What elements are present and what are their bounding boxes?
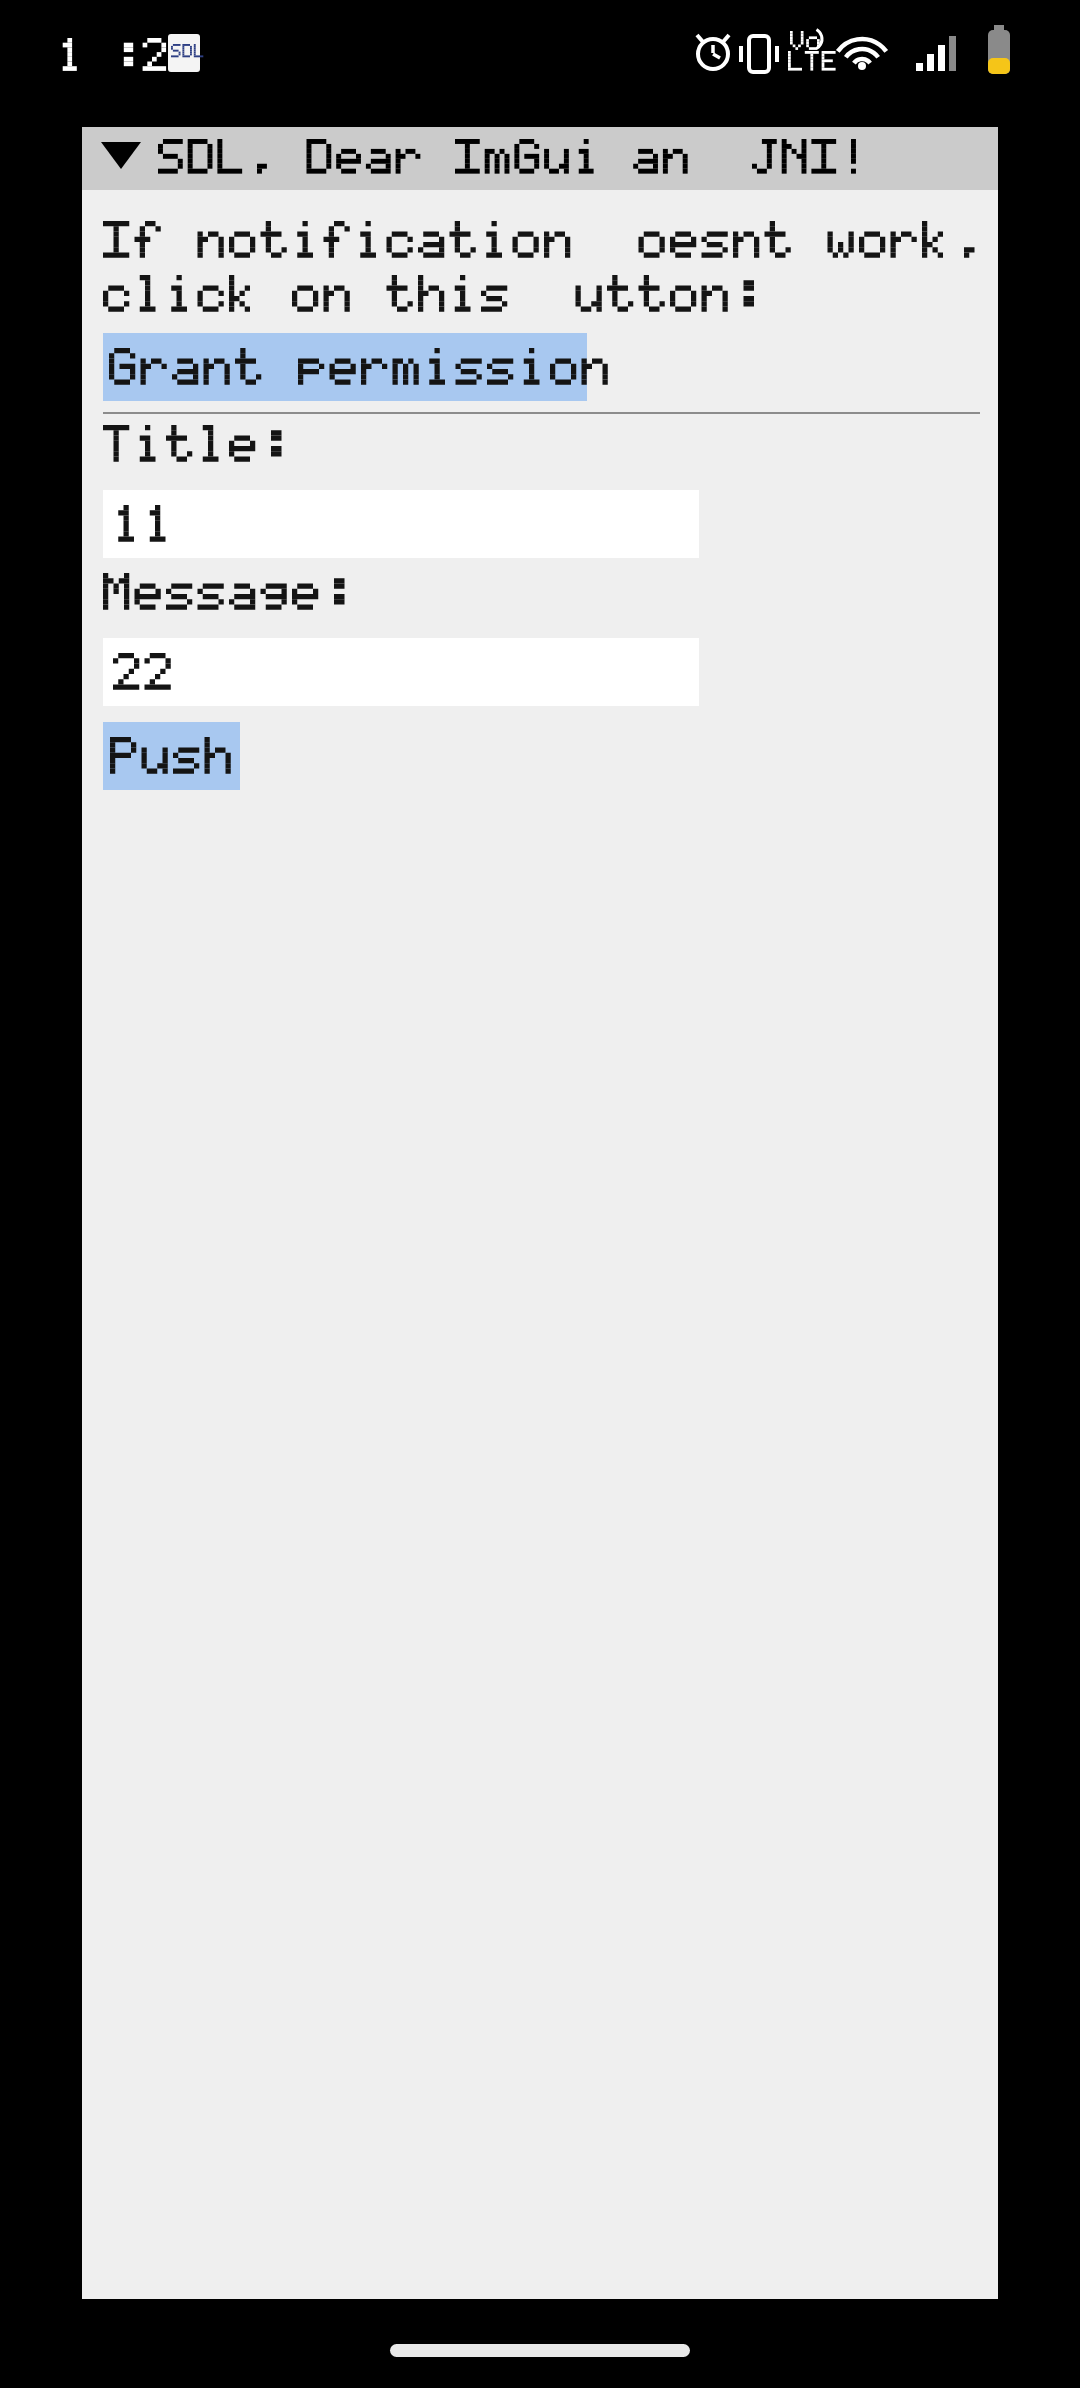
- button[interactable]: Message text field: [103, 638, 699, 706]
- button[interactable]: Title text field: [103, 490, 699, 558]
- button[interactable]: Push: [103, 722, 240, 790]
- button[interactable]: Grant permission: [103, 333, 587, 401]
- button[interactable]: Collapse window: [103, 127, 998, 190]
